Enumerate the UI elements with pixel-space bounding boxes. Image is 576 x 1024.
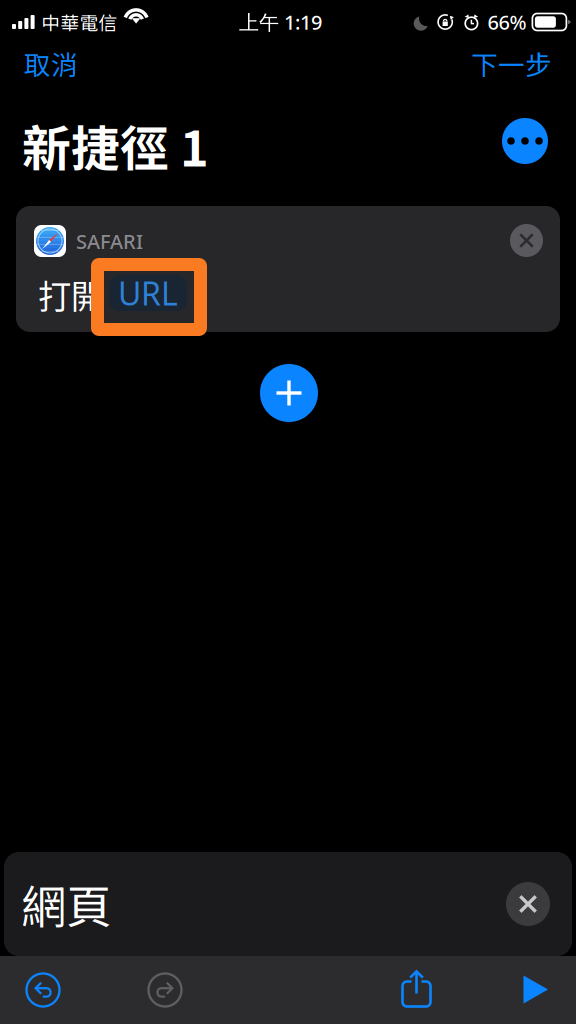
staticText: 新捷徑 1 bbox=[22, 110, 209, 180]
staticText: URL bbox=[118, 272, 178, 314]
staticText: 打開 bbox=[38, 270, 104, 318]
button[interactable]: 取消 bbox=[24, 44, 78, 83]
staticText: 下一步 bbox=[471, 44, 552, 83]
staticText: 中華電信 bbox=[42, 8, 118, 35]
staticText: 上午 1:19 bbox=[239, 9, 322, 35]
staticText: 取消 bbox=[24, 44, 78, 83]
button[interactable]: Add action bbox=[260, 364, 318, 422]
staticText: SAFARI bbox=[76, 228, 143, 255]
button[interactable]: More options bbox=[502, 118, 548, 164]
button[interactable]: Remove action bbox=[510, 224, 543, 257]
button[interactable]: Share bbox=[402, 970, 431, 1008]
button[interactable]: Redo bbox=[147, 972, 183, 1008]
button[interactable]: Clear bbox=[506, 882, 550, 926]
staticText: 66% bbox=[487, 9, 526, 35]
button[interactable]: 下一步 bbox=[471, 44, 552, 83]
button[interactable]: Run bbox=[522, 975, 549, 1004]
button[interactable]: Undo bbox=[25, 972, 61, 1008]
staticText: 網頁 bbox=[21, 871, 111, 937]
